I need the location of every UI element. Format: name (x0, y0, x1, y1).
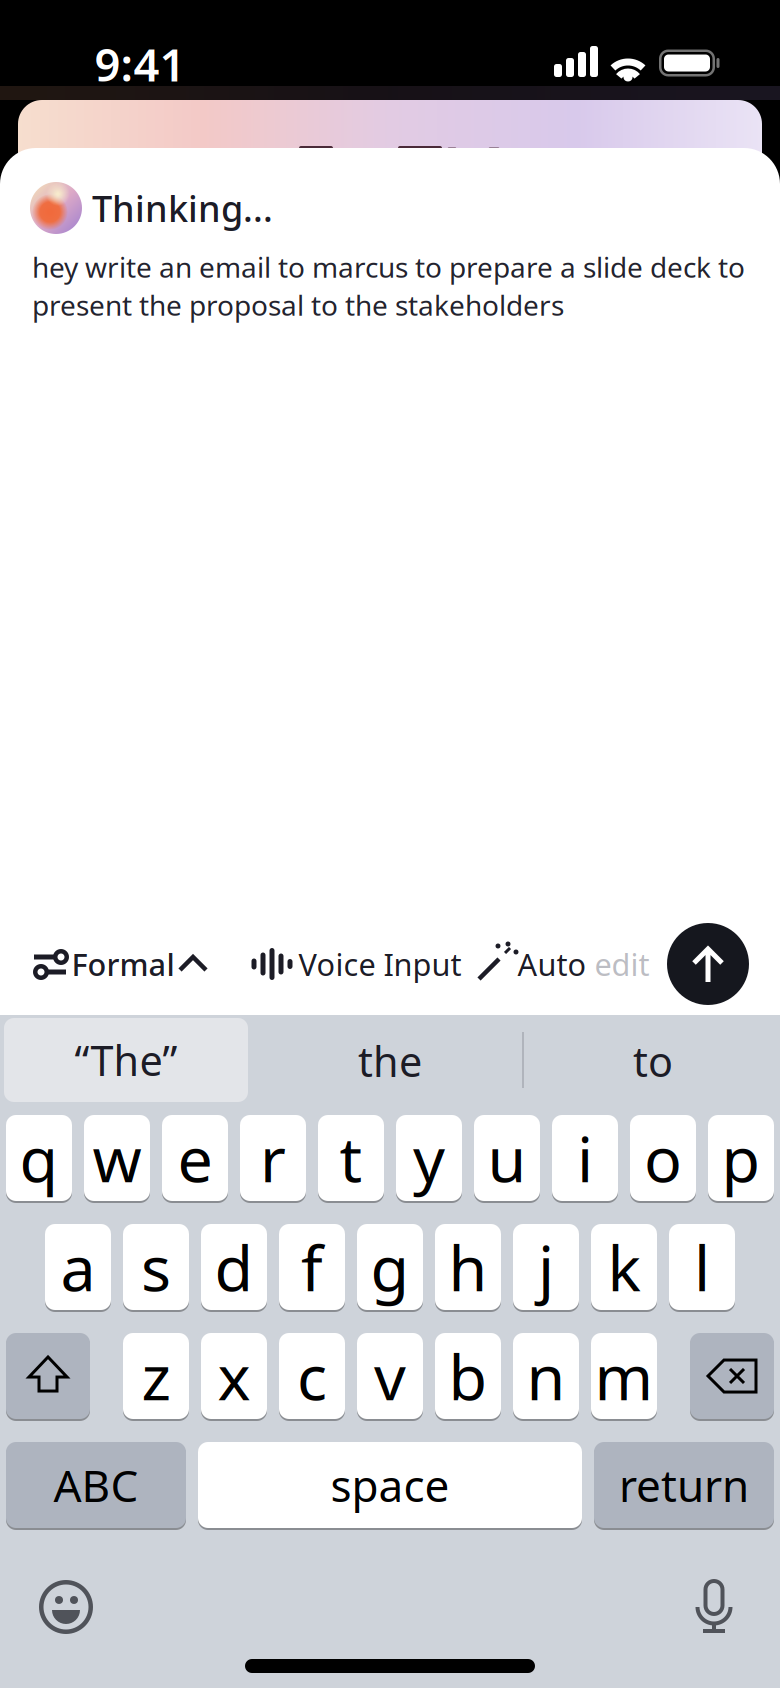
staticText: the (358, 1034, 422, 1088)
staticText: j (538, 1225, 554, 1309)
staticText: space (330, 1456, 449, 1514)
button[interactable]: return (594, 1441, 774, 1529)
button[interactable]: q (6, 1114, 72, 1202)
staticText: n (526, 1334, 565, 1418)
staticText: edit (594, 944, 649, 984)
staticText: i (577, 1116, 593, 1200)
button[interactable]: s (123, 1223, 189, 1311)
staticText: Auto (517, 944, 586, 984)
button[interactable]: h (435, 1223, 501, 1311)
button[interactable]: Send (667, 923, 749, 1005)
button[interactable]: g (357, 1223, 423, 1311)
button[interactable]: y (396, 1114, 462, 1202)
button[interactable]: u (474, 1114, 540, 1202)
button[interactable]: c (279, 1332, 345, 1420)
staticText: Voice Input (298, 944, 461, 984)
staticText: v (374, 1334, 406, 1418)
staticText: Formal (71, 944, 174, 984)
staticText: k (607, 1225, 640, 1309)
button[interactable]: x (201, 1332, 267, 1420)
staticText: y (413, 1116, 445, 1200)
button[interactable]: Auto edit (474, 924, 650, 1004)
button[interactable]: z (123, 1332, 189, 1420)
button[interactable]: f (279, 1223, 345, 1311)
button[interactable]: p (708, 1114, 774, 1202)
staticText: to (633, 1034, 673, 1088)
staticText: g (370, 1225, 409, 1309)
button[interactable]: v (357, 1332, 423, 1420)
button[interactable]: w (84, 1114, 150, 1202)
button[interactable]: k (591, 1223, 657, 1311)
button[interactable]: Emoji (39, 1580, 93, 1634)
staticText: m (594, 1334, 653, 1418)
staticText: a (60, 1225, 95, 1309)
staticText: e (177, 1116, 212, 1200)
staticText: u (487, 1116, 526, 1200)
button[interactable]: Shift (6, 1332, 90, 1420)
staticText: b (448, 1334, 487, 1418)
staticText: z (141, 1334, 170, 1418)
staticText: 9:41 (94, 34, 185, 94)
button[interactable]: o (630, 1114, 696, 1202)
staticText: “The” (74, 1033, 177, 1087)
staticText: t (339, 1116, 362, 1200)
staticText: w (92, 1116, 141, 1200)
button[interactable]: “The” (4, 1018, 248, 1102)
staticText: present the proposal to the stakeholders (32, 286, 564, 324)
staticText: hey write an email to marcus to prepare … (32, 248, 745, 286)
button[interactable]: d (201, 1223, 267, 1311)
staticText: c (297, 1334, 327, 1418)
staticText: f (301, 1225, 323, 1309)
staticText: h (448, 1225, 487, 1309)
button[interactable]: m (591, 1332, 657, 1420)
button[interactable]: j (513, 1223, 579, 1311)
button[interactable]: Formal tone selector (17, 924, 217, 1004)
staticText: q (19, 1116, 58, 1200)
button[interactable]: n (513, 1332, 579, 1420)
staticText: Thinking... (92, 184, 273, 232)
button[interactable]: Voice Input (246, 924, 436, 1004)
staticText: return (619, 1456, 749, 1514)
staticText: p (721, 1116, 760, 1200)
button[interactable]: the (270, 1019, 510, 1103)
staticText: ABC (53, 1456, 138, 1514)
staticText: r (260, 1116, 286, 1200)
staticText: o (644, 1116, 682, 1200)
button[interactable]: t (318, 1114, 384, 1202)
button[interactable]: i (552, 1114, 618, 1202)
button[interactable]: to (533, 1019, 773, 1103)
button[interactable]: a (45, 1223, 111, 1311)
button[interactable]: ABC (6, 1441, 186, 1529)
button[interactable]: space (198, 1441, 582, 1529)
staticText: l (694, 1225, 710, 1309)
button[interactable]: l (669, 1223, 735, 1311)
button[interactable]: Dictation (691, 1577, 737, 1635)
button[interactable]: e (162, 1114, 228, 1202)
button[interactable]: b (435, 1332, 501, 1420)
staticText: d (214, 1225, 253, 1309)
button[interactable]: Delete (690, 1332, 774, 1420)
staticText: x (217, 1334, 250, 1418)
button[interactable]: r (240, 1114, 306, 1202)
staticText: s (141, 1225, 171, 1309)
